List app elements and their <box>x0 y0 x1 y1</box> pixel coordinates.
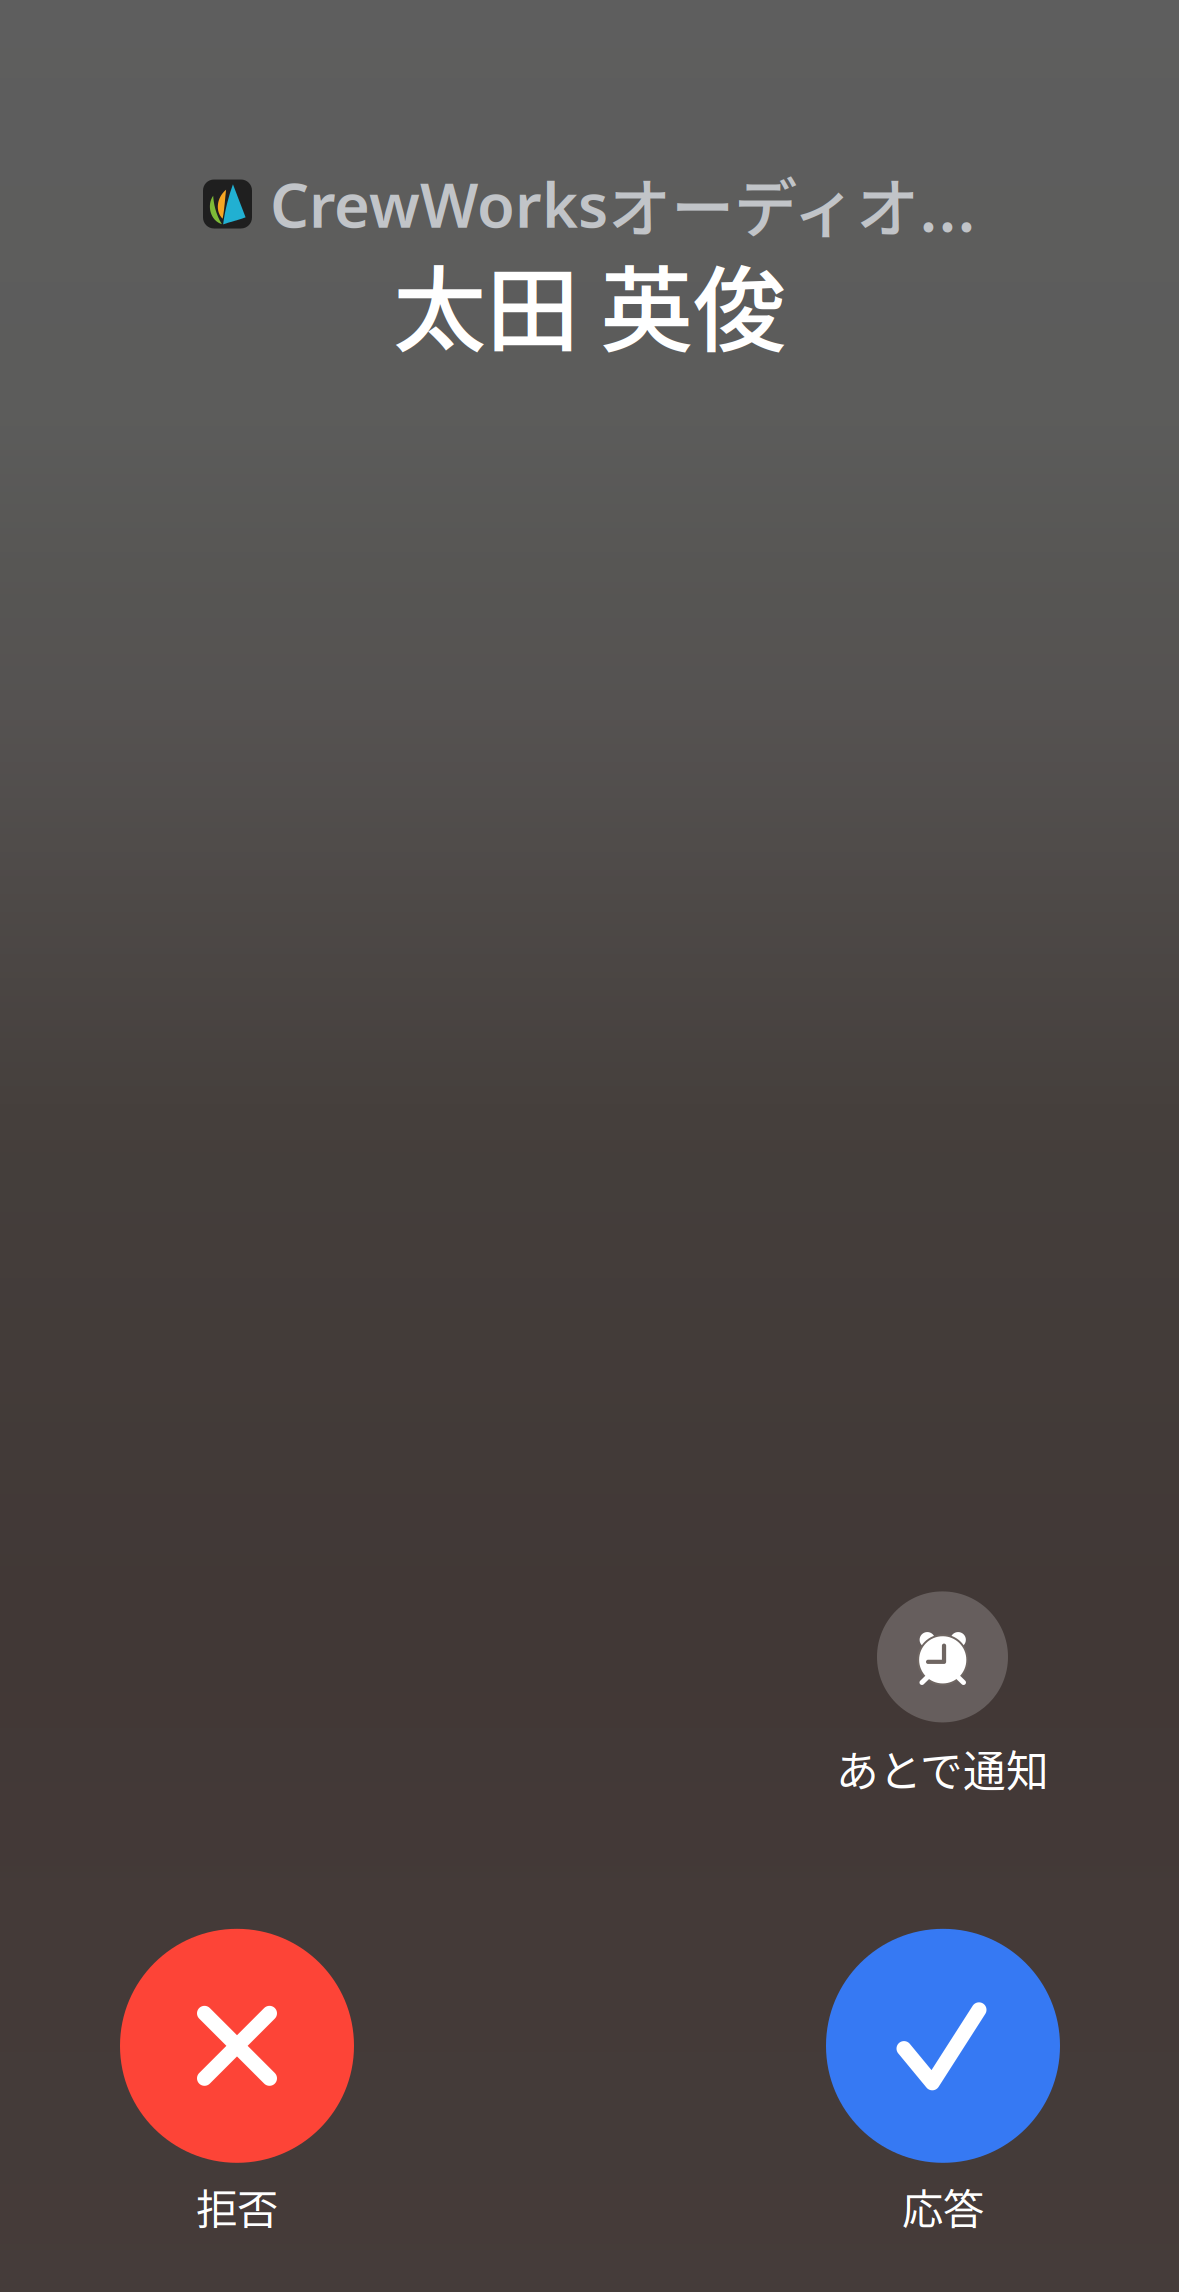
staticText: 応答 <box>902 2176 984 2236</box>
button[interactable]: あとで通知 <box>836 1591 1049 1799</box>
staticText: オーディオ... <box>608 158 976 250</box>
button[interactable]: 拒否 <box>120 1929 354 2236</box>
staticText: CrewWorks <box>270 163 608 245</box>
staticText: 拒否 <box>196 2176 278 2236</box>
staticText: あとで通知 <box>836 1737 1049 1799</box>
button[interactable]: 応答 <box>826 1929 1060 2236</box>
staticText: 太田 英俊 <box>393 236 786 371</box>
